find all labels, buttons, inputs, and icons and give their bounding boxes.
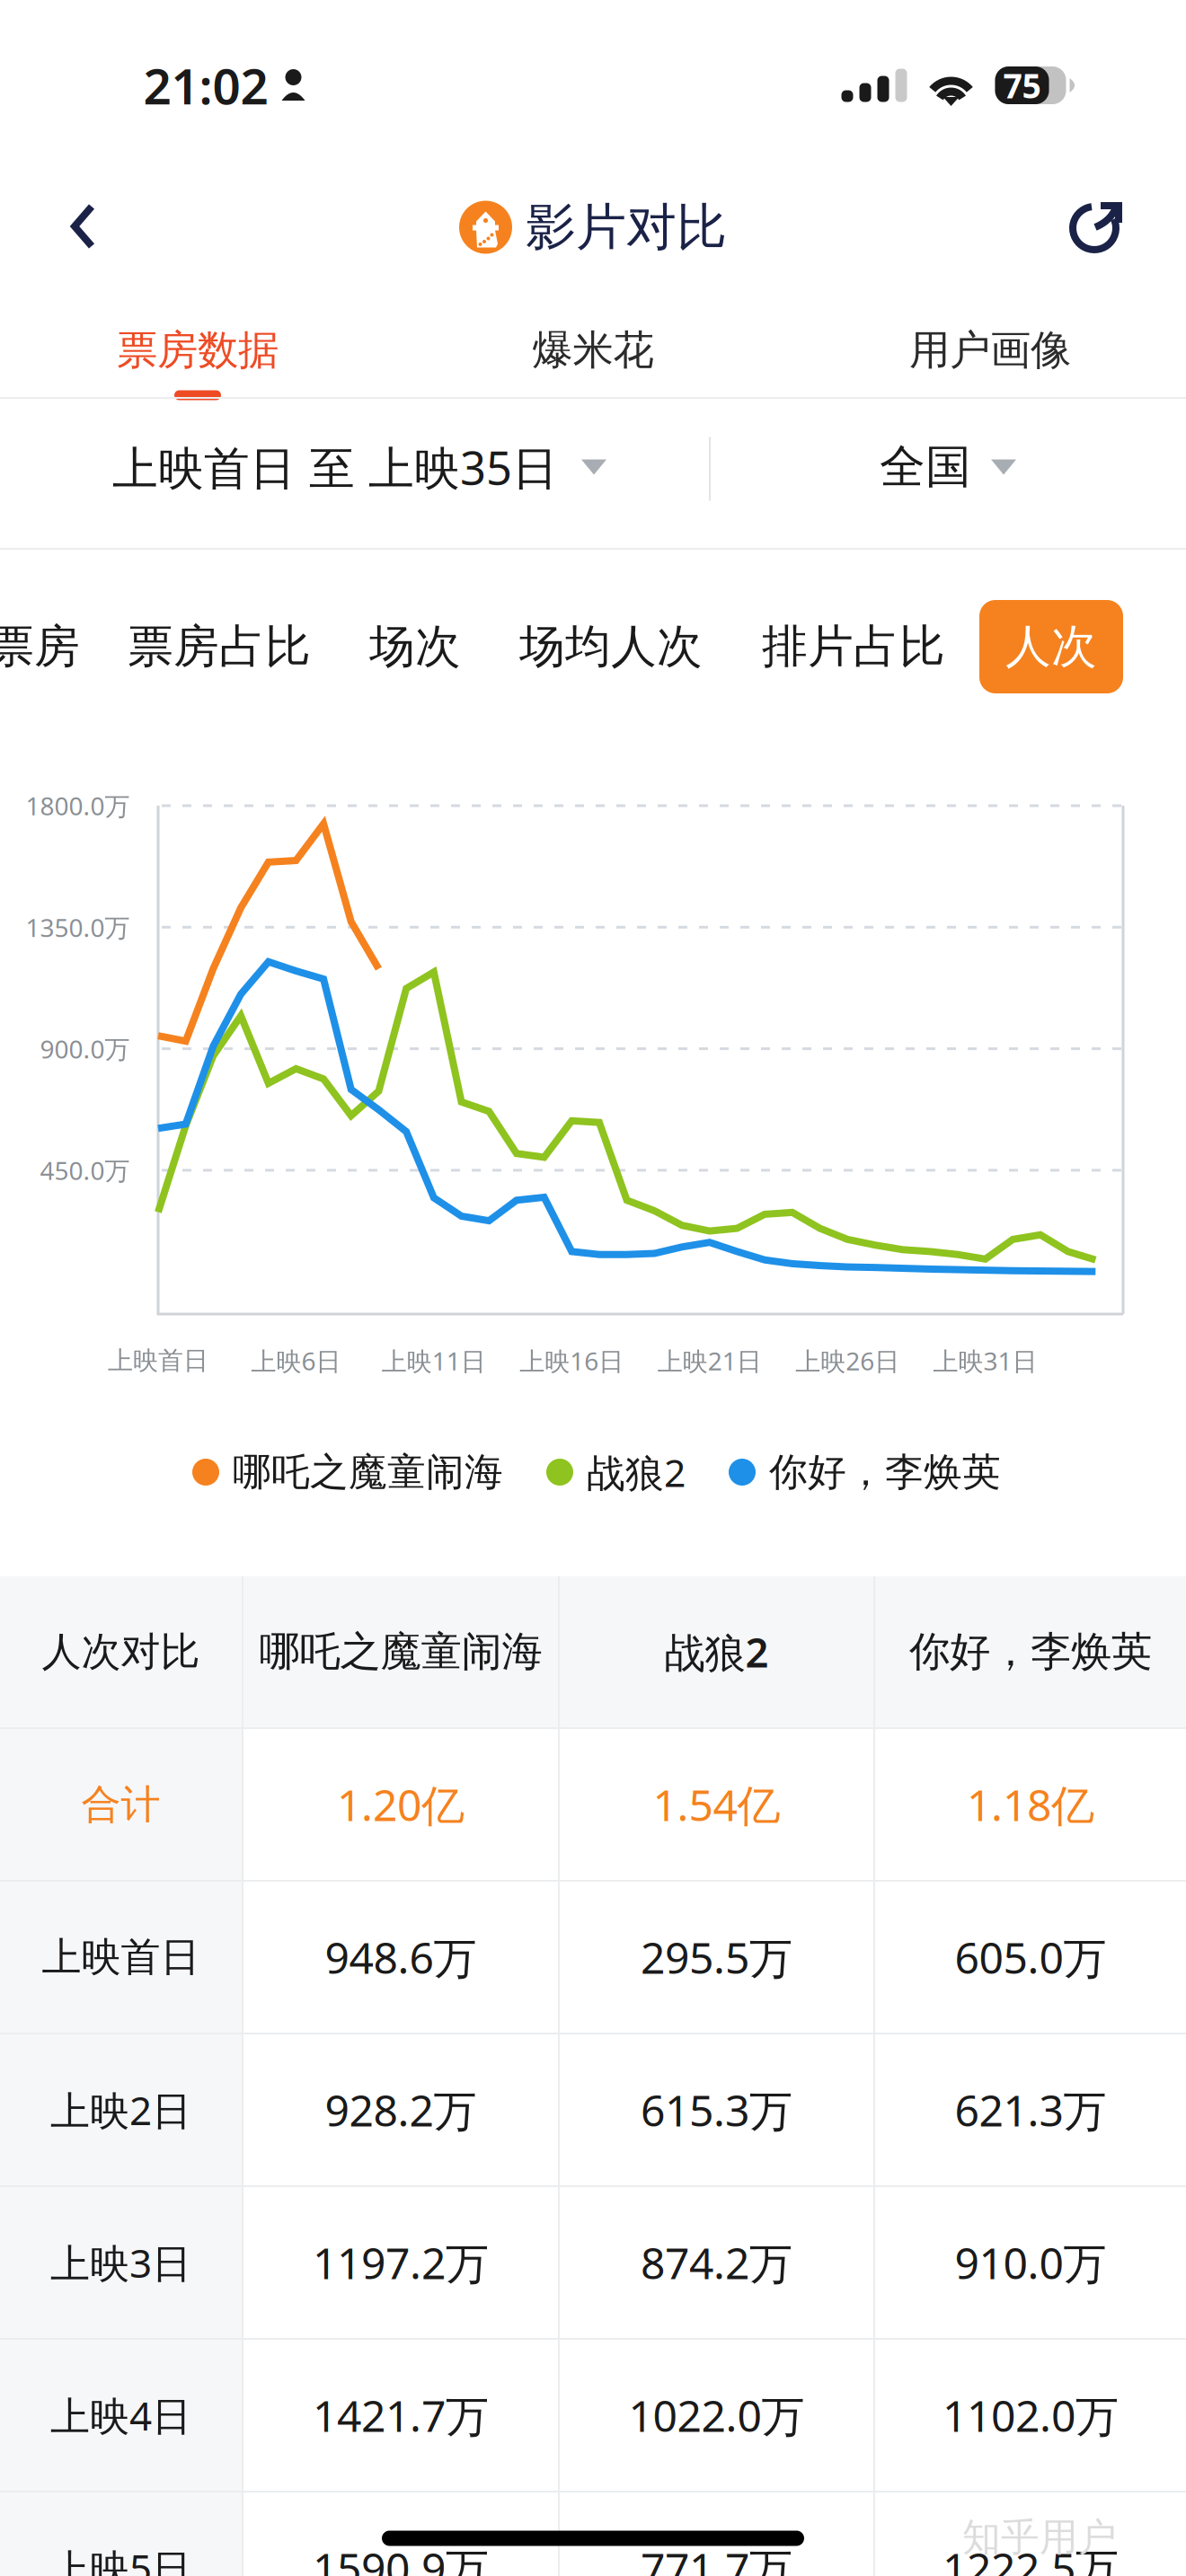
- staticText: 上映16日: [520, 1344, 624, 1377]
- staticText: 票房: [0, 619, 80, 675]
- button[interactable]: 返回: [0, 169, 129, 284]
- staticText: 1.20亿: [337, 1776, 465, 1833]
- staticText: 上映5日: [50, 2542, 191, 2576]
- staticText: 上映3日: [50, 2236, 191, 2289]
- staticText: 1421.7万: [313, 2387, 489, 2444]
- staticText: 1800.0万: [26, 789, 130, 822]
- button[interactable]: 场次: [346, 592, 484, 702]
- staticText: 上映首日: [108, 1345, 208, 1376]
- staticText: 上映2日: [50, 2084, 191, 2136]
- staticText: 合计: [81, 1780, 160, 1829]
- staticText: 1.18亿: [967, 1776, 1094, 1833]
- staticText: 1197.2万: [313, 2234, 489, 2291]
- staticText: 948.6万: [325, 1928, 477, 1986]
- button[interactable]: 全国: [813, 393, 1083, 542]
- staticText: 621.3万: [955, 2081, 1106, 2138]
- staticText: 爆米花: [532, 325, 654, 375]
- staticText: 你好，李焕英: [909, 1627, 1152, 1677]
- staticText: 1222.5万: [943, 2539, 1119, 2576]
- staticText: 1102.0万: [943, 2387, 1119, 2444]
- staticText: 哪吒之魔童闹海: [259, 1627, 542, 1677]
- staticText: 影片对比: [526, 196, 727, 258]
- button[interactable]: 爆米花: [458, 318, 728, 397]
- staticText: 你好，李焕英: [769, 1449, 1001, 1496]
- staticText: 场均人次: [519, 619, 703, 675]
- staticText: 票房数据: [117, 325, 279, 375]
- staticText: 上映6日: [251, 1344, 341, 1377]
- staticText: 874.2万: [641, 2234, 792, 2291]
- staticText: 900.0万: [40, 1032, 130, 1065]
- staticText: 知乎用户: [962, 2514, 1117, 2561]
- staticText: 上映首日: [42, 1933, 200, 1981]
- staticText: 上映4日: [50, 2389, 191, 2441]
- staticText: 75: [1003, 63, 1041, 108]
- staticText: 1590.9万: [313, 2539, 489, 2576]
- button[interactable]: 上映首日 至 上映35日: [63, 393, 656, 542]
- button[interactable]: 排片占比: [739, 592, 969, 702]
- staticText: 21:02: [143, 53, 268, 118]
- staticText: 场次: [369, 619, 461, 675]
- staticText: 战狼2: [587, 1447, 686, 1498]
- staticText: 上映31日: [933, 1344, 1037, 1377]
- button[interactable]: 票房数据: [63, 318, 332, 397]
- staticText: 全国: [880, 439, 971, 495]
- button[interactable]: 刷新: [1040, 172, 1186, 280]
- staticText: 450.0万: [40, 1154, 130, 1187]
- staticText: 人次: [1005, 619, 1097, 675]
- staticText: 1350.0万: [26, 910, 130, 944]
- staticText: 771.7万: [641, 2539, 792, 2576]
- staticText: 1022.0万: [628, 2387, 805, 2444]
- staticText: 上映21日: [657, 1344, 762, 1377]
- staticText: 上映11日: [382, 1344, 486, 1377]
- staticText: 605.0万: [955, 1928, 1106, 1986]
- staticText: 哪吒之魔童闹海: [233, 1449, 503, 1496]
- staticText: 票房占比: [128, 619, 311, 675]
- button[interactable]: 票房: [0, 592, 103, 702]
- staticText: 910.0万: [955, 2234, 1106, 2291]
- staticText: 928.2万: [325, 2081, 477, 2138]
- staticText: 615.3万: [641, 2081, 792, 2138]
- staticText: 战狼2: [664, 1625, 769, 1679]
- staticText: 排片占比: [762, 619, 945, 675]
- button[interactable]: 用户画像: [855, 318, 1125, 397]
- staticText: 295.5万: [641, 1928, 792, 1986]
- staticText: 用户画像: [909, 325, 1071, 375]
- button[interactable]: 人次: [979, 600, 1123, 693]
- staticText: 上映26日: [795, 1344, 899, 1377]
- button[interactable]: 票房占比: [104, 592, 334, 702]
- staticText: 人次对比: [42, 1628, 200, 1676]
- staticText: 1.54亿: [653, 1776, 780, 1833]
- staticText: 上映首日 至 上映35日: [112, 437, 558, 497]
- button[interactable]: 场均人次: [496, 592, 726, 702]
